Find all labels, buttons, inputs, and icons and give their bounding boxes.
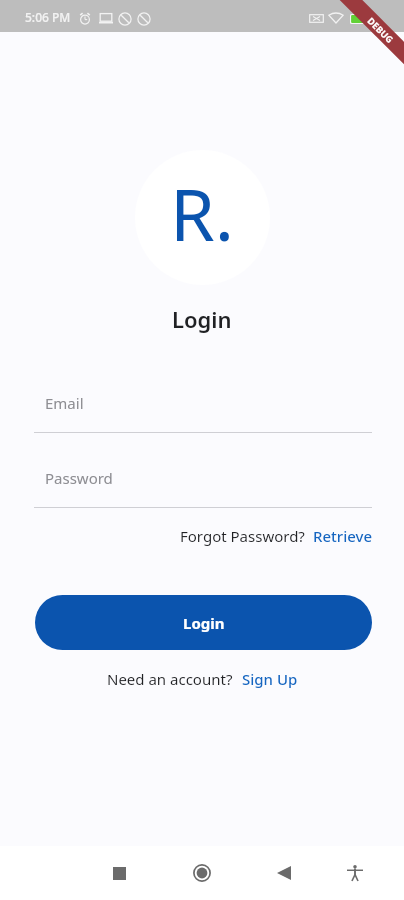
staticText: DEBUG — [365, 14, 396, 45]
staticText: Login — [183, 613, 225, 633]
button[interactable]: Sign Up — [242, 669, 298, 689]
staticText: Sign Up — [242, 669, 298, 689]
button[interactable]: Back — [262, 851, 306, 895]
staticText: Retrieve — [313, 526, 373, 546]
button[interactable]: Accessibility — [333, 851, 377, 895]
staticText: Need an account? — [107, 669, 233, 689]
button[interactable]: Retrieve — [313, 526, 373, 546]
button[interactable]: Login — [35, 595, 372, 650]
button[interactable]: Password — [34, 471, 372, 508]
staticText: Email — [45, 393, 84, 413]
staticText: Forgot Password? — [180, 526, 305, 546]
button[interactable]: Recent apps — [97, 851, 141, 895]
button[interactable]: Home — [180, 851, 224, 895]
staticText: Login — [172, 304, 232, 334]
staticText: Password — [45, 468, 113, 488]
button[interactable]: Email — [34, 396, 372, 433]
staticText: 5:06 PM — [25, 9, 71, 25]
staticText: R. — [170, 164, 235, 262]
